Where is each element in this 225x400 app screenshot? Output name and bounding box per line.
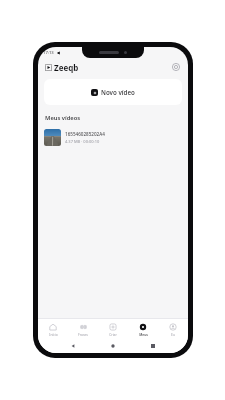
button[interactable]: 1655460285202A4 [44, 126, 182, 148]
staticText: Meus [139, 332, 148, 336]
staticText: Zeeqb [54, 62, 79, 73]
button[interactable]: Eu [158, 319, 188, 339]
staticText: Início [49, 332, 58, 336]
staticText: Eu [171, 332, 175, 336]
button[interactable]: Novo vídeo [44, 79, 182, 105]
staticText: Frases [78, 332, 88, 336]
button[interactable]: Conta [171, 62, 181, 72]
staticText: 4.37 MB · 00:00:10 [65, 139, 100, 144]
staticText: Meus vídeos [45, 114, 81, 122]
button[interactable]: Criar [98, 319, 128, 339]
button[interactable]: Zeeqb [45, 62, 79, 73]
button[interactable]: Frases [68, 319, 98, 339]
button[interactable]: Início [38, 319, 68, 339]
button[interactable]: Meus [128, 319, 158, 339]
staticText: Novo vídeo [101, 88, 135, 96]
button[interactable]: Início [108, 341, 118, 351]
staticText: 1655460285202A4 [65, 131, 105, 137]
button[interactable]: Voltar [68, 341, 78, 351]
button[interactable]: Recentes [148, 341, 158, 351]
staticText: Criar [109, 332, 117, 336]
staticText: 17:13 [43, 50, 54, 56]
